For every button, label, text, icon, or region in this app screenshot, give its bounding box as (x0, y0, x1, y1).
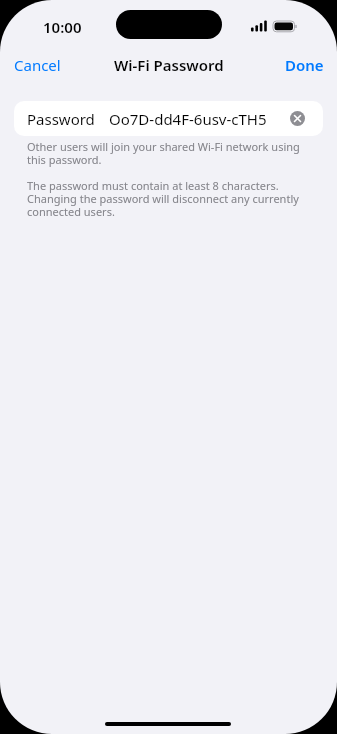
staticText: The password must contain at least 8 cha… (27, 178, 299, 219)
staticText: Done (285, 55, 324, 75)
staticText: Wi-Fi Password (114, 55, 224, 75)
staticText: Oo7D-dd4F-6usv-cTH5 (109, 109, 267, 129)
button[interactable] (290, 111, 305, 126)
button[interactable]: Done (279, 52, 330, 78)
staticText: Cancel (14, 55, 61, 75)
button[interactable]: Cancel (8, 52, 67, 78)
staticText: 10:00 (43, 17, 82, 37)
button[interactable]: Password (14, 101, 323, 136)
staticText: Password (27, 109, 95, 129)
staticText: Other users will join your shared Wi-Fi … (27, 139, 300, 167)
